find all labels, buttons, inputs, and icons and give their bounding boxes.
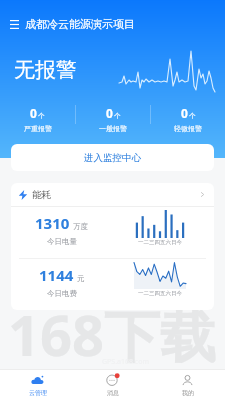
staticText: 一二三四五六日今 [138, 239, 182, 246]
button[interactable]: 云管理 [0, 370, 75, 400]
button[interactable]: 能耗 [18, 183, 206, 206]
button[interactable]: 消息 [75, 370, 150, 400]
staticText: 云管理 [29, 389, 47, 397]
staticText: 个 [114, 112, 121, 120]
staticText: 个 [189, 112, 196, 120]
staticText: 进入监控中心 [84, 152, 141, 164]
staticText: 无报警 [14, 57, 77, 83]
staticText: 0 [181, 105, 188, 121]
staticText: 0 [30, 105, 37, 121]
staticText: GPS.a168.com [102, 357, 150, 367]
button[interactable]: 1144 [11, 259, 214, 310]
staticText: 我的 [182, 389, 194, 397]
staticText: 一般报警 [99, 124, 127, 133]
staticText: 0 [106, 105, 113, 121]
staticText: 一二三四五六日今 [138, 290, 182, 297]
staticText: 严重报警 [24, 124, 52, 133]
staticText: 1310 [35, 213, 70, 233]
staticText: 168下载 [8, 296, 217, 372]
staticText: 轻微报警 [174, 124, 202, 133]
staticText: 万度 [73, 222, 88, 231]
staticText: 个 [38, 112, 45, 120]
staticText: 元 [77, 274, 85, 283]
button[interactable]: 1310 [11, 207, 214, 258]
button[interactable]: 我的 [150, 370, 225, 400]
staticText: 今日电量 [47, 237, 77, 246]
button[interactable]: 进入监控中心 [11, 144, 214, 171]
staticText: 1144 [39, 265, 74, 285]
staticText: 能耗 [32, 189, 51, 201]
button[interactable]: Menu [5, 15, 23, 33]
staticText: 成都冷云能源演示项目 [25, 17, 135, 31]
staticText: 消息 [107, 389, 119, 397]
staticText: 今日电费 [47, 289, 77, 298]
